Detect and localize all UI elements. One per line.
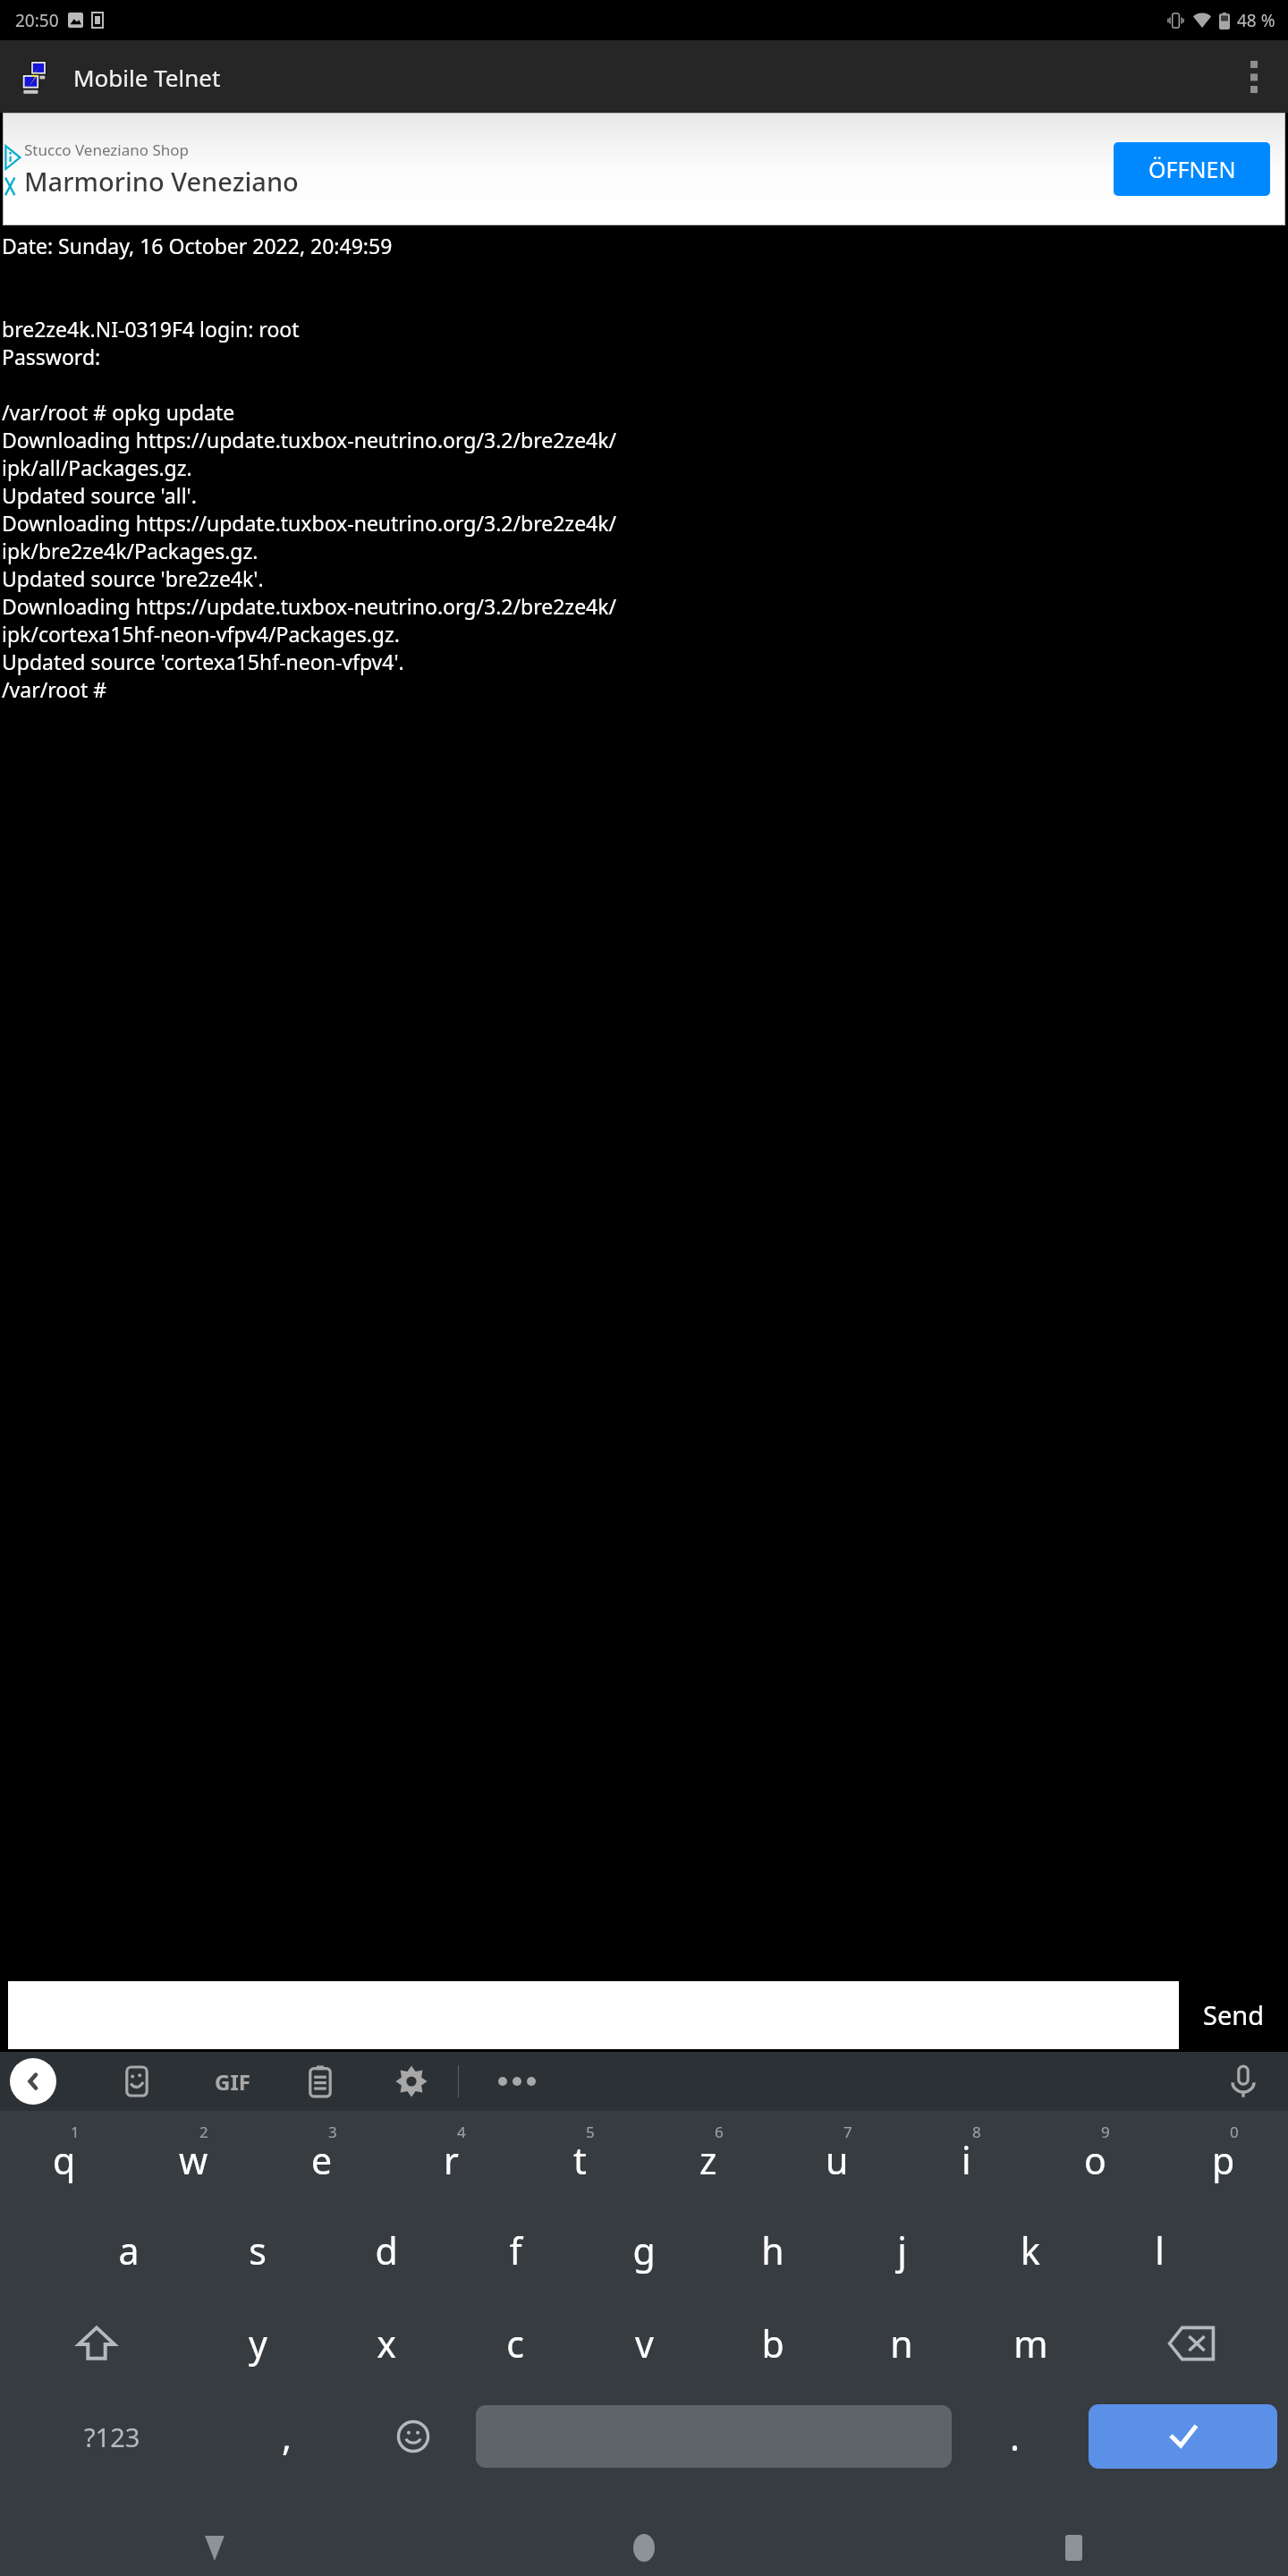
staticText: ipk/bre2ze4k/Packages.gz.: [2, 537, 258, 564]
button[interactable]: g: [580, 2204, 708, 2297]
button[interactable]: x: [322, 2297, 451, 2390]
staticText: Updated source 'all'.: [2, 481, 197, 509]
staticText: 7: [843, 2122, 852, 2142]
button[interactable]: More options: [1229, 52, 1279, 102]
staticText: ipk/all/Packages.gz.: [2, 453, 192, 481]
button[interactable]: Back: [0, 2520, 429, 2576]
staticText: 6: [715, 2122, 724, 2142]
staticText: GIF: [215, 2067, 250, 2097]
staticText: l: [1155, 2225, 1165, 2275]
staticText: Downloading https://update.tuxbox-neutri…: [2, 426, 617, 453]
button[interactable]: Emoji: [350, 2390, 476, 2483]
staticText: e: [311, 2135, 333, 2185]
staticText: p: [1212, 2135, 1235, 2185]
button[interactable]: ,: [224, 2390, 350, 2483]
staticText: ÖFFNEN: [1148, 154, 1236, 184]
staticText: ?123: [84, 2419, 140, 2454]
button[interactable]: More: [490, 2058, 544, 2105]
staticText: Marmorino Veneziano: [24, 164, 299, 199]
button[interactable]: 9: [1030, 2111, 1159, 2204]
button[interactable]: Clipboard: [295, 2056, 345, 2106]
button[interactable]: b: [708, 2297, 837, 2390]
staticText: ipk/cortexa15hf-neon-vfpv4/Packages.gz.: [2, 620, 400, 648]
staticText: j: [897, 2225, 907, 2275]
button[interactable]: ÖFFNEN: [1114, 142, 1270, 196]
button[interactable]: Home: [429, 2520, 859, 2576]
staticText: y: [249, 2318, 267, 2368]
staticText: 48 %: [1237, 9, 1275, 32]
staticText: w: [179, 2135, 208, 2185]
staticText: k: [1021, 2225, 1040, 2275]
staticText: Password:: [2, 343, 101, 370]
button[interactable]: k: [966, 2204, 1095, 2297]
button[interactable]: Stickers: [112, 2056, 162, 2106]
button[interactable]: s: [193, 2204, 322, 2297]
button[interactable]: Recents: [859, 2520, 1288, 2576]
staticText: Mobile Telnet: [73, 62, 221, 93]
staticText: n: [890, 2318, 913, 2368]
button[interactable]: 8: [902, 2111, 1030, 2204]
staticText: Updated source 'bre2ze4k'.: [2, 564, 264, 592]
staticText: s: [249, 2225, 267, 2275]
button[interactable]: c: [451, 2297, 580, 2390]
button[interactable]: 4: [386, 2111, 515, 2204]
button[interactable]: Back: [10, 2058, 56, 2105]
staticText: u: [826, 2135, 849, 2185]
staticText: Downloading https://update.tuxbox-neutri…: [2, 592, 617, 620]
button[interactable]: 1: [0, 2111, 129, 2204]
staticText: Updated source 'cortexa15hf-neon-vfpv4'.: [2, 648, 404, 675]
staticText: Send: [1203, 1997, 1265, 2032]
button[interactable]: f: [451, 2204, 580, 2297]
button[interactable]: ?123: [0, 2390, 224, 2483]
button[interactable]: a: [64, 2204, 193, 2297]
staticText: d: [375, 2225, 398, 2275]
button[interactable]: 7: [773, 2111, 902, 2204]
staticText: t: [573, 2135, 587, 2185]
staticText: .: [1010, 2411, 1020, 2462]
staticText: 0: [1230, 2122, 1239, 2142]
button[interactable]: GIF: [201, 2058, 264, 2105]
button[interactable]: 6: [644, 2111, 773, 2204]
staticText: b: [761, 2318, 784, 2368]
staticText: bre2ze4k.NI-0319F4 login: root: [2, 315, 300, 343]
button[interactable]: d: [322, 2204, 451, 2297]
button[interactable]: j: [837, 2204, 966, 2297]
button[interactable]: Command input: [8, 1981, 1179, 2049]
button[interactable]: Shift: [0, 2297, 193, 2390]
button[interactable]: Settings: [386, 2056, 436, 2106]
button[interactable]: y: [193, 2297, 322, 2390]
staticText: 20:50: [15, 9, 59, 32]
staticText: g: [632, 2225, 656, 2275]
staticText: 2: [199, 2122, 208, 2142]
button[interactable]: m: [966, 2297, 1095, 2390]
staticText: Stucco Veneziano Shop: [24, 140, 190, 160]
staticText: f: [509, 2225, 522, 2275]
button[interactable]: 0: [1159, 2111, 1288, 2204]
staticText: 9: [1101, 2122, 1110, 2142]
staticText: a: [118, 2225, 140, 2275]
staticText: ,: [282, 2411, 292, 2462]
staticText: v: [635, 2318, 654, 2368]
button[interactable]: h: [708, 2204, 837, 2297]
button[interactable]: Space: [476, 2405, 952, 2468]
staticText: 3: [328, 2122, 337, 2142]
staticText: /var/root #: [2, 675, 107, 703]
button[interactable]: Enter: [1089, 2404, 1277, 2469]
staticText: m: [1013, 2318, 1048, 2368]
staticText: c: [506, 2318, 524, 2368]
button[interactable]: v: [580, 2297, 708, 2390]
button[interactable]: Voice input: [1218, 2056, 1268, 2106]
button[interactable]: 2: [129, 2111, 258, 2204]
button[interactable]: Stucco Veneziano Shop: [3, 113, 1285, 225]
staticText: 5: [586, 2122, 595, 2142]
button[interactable]: Backspace: [1095, 2297, 1288, 2390]
staticText: q: [53, 2135, 76, 2185]
button[interactable]: Send: [1179, 1978, 1288, 2052]
staticText: h: [761, 2225, 784, 2275]
button[interactable]: 5: [515, 2111, 644, 2204]
button[interactable]: n: [837, 2297, 966, 2390]
staticText: 8: [972, 2122, 981, 2142]
button[interactable]: l: [1095, 2204, 1224, 2297]
button[interactable]: 3: [258, 2111, 386, 2204]
button[interactable]: .: [952, 2390, 1078, 2483]
